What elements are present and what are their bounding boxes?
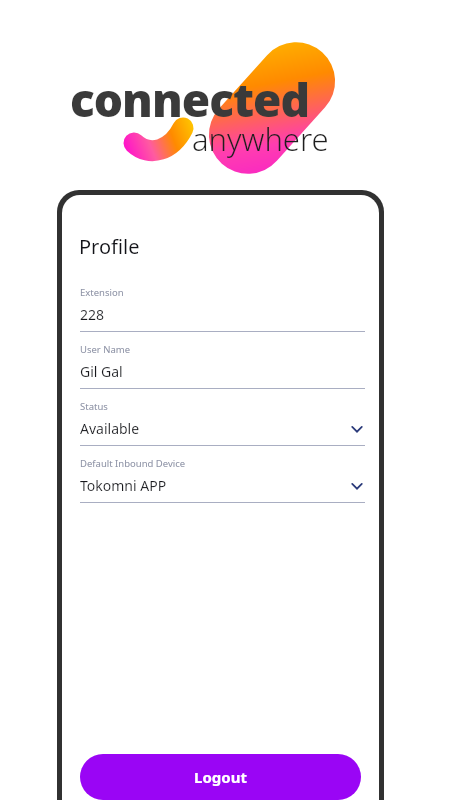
button[interactable]: Default Inbound Device bbox=[62, 457, 379, 514]
staticText: Profile bbox=[79, 233, 140, 260]
button[interactable]: Logout bbox=[80, 754, 361, 800]
staticText: anywhere bbox=[192, 118, 329, 160]
staticText: User Name bbox=[80, 343, 131, 356]
staticText: Status bbox=[80, 400, 108, 413]
staticText: connected bbox=[70, 68, 310, 131]
button[interactable]: Status bbox=[62, 400, 379, 457]
button[interactable]: User Name bbox=[62, 343, 379, 400]
staticText: Tokomni APP bbox=[80, 476, 349, 495]
staticText: Logout bbox=[194, 767, 247, 787]
other: Expand Status bbox=[349, 421, 365, 437]
other: Expand Default Inbound Device bbox=[349, 478, 365, 494]
staticText: Available bbox=[80, 419, 349, 438]
staticText: Extension bbox=[80, 286, 124, 299]
button[interactable]: Extension bbox=[62, 286, 379, 343]
staticText: 228 bbox=[80, 305, 365, 324]
staticText: Gil Gal bbox=[80, 362, 365, 381]
staticText: Default Inbound Device bbox=[80, 457, 186, 470]
